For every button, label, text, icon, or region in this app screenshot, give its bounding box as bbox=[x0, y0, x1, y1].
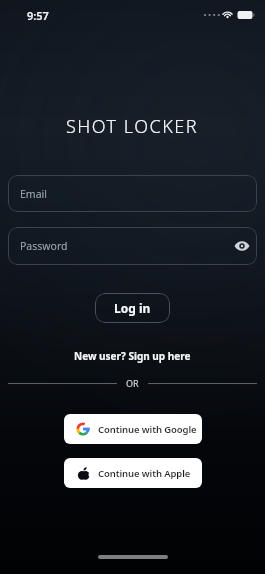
staticText: OR bbox=[126, 377, 139, 389]
staticText: New user? Sign up here bbox=[74, 349, 191, 363]
button[interactable]: Continue with Google bbox=[64, 414, 202, 444]
staticText: Log in bbox=[114, 300, 151, 316]
button[interactable]: Email bbox=[8, 175, 257, 212]
button[interactable]: Password bbox=[8, 227, 257, 265]
button[interactable]: Continue with Apple bbox=[64, 458, 202, 488]
staticText: Continue with Apple bbox=[98, 467, 191, 480]
button[interactable]: Log in bbox=[95, 293, 170, 323]
staticText: Password bbox=[20, 239, 68, 253]
staticText: 9:57 bbox=[27, 8, 49, 23]
button[interactable] bbox=[234, 238, 250, 254]
staticText: SHOT LOCKER bbox=[66, 114, 199, 139]
staticText: Continue with Google bbox=[98, 423, 197, 436]
button[interactable]: New user? Sign up here bbox=[74, 349, 191, 363]
staticText: Email bbox=[20, 187, 47, 201]
